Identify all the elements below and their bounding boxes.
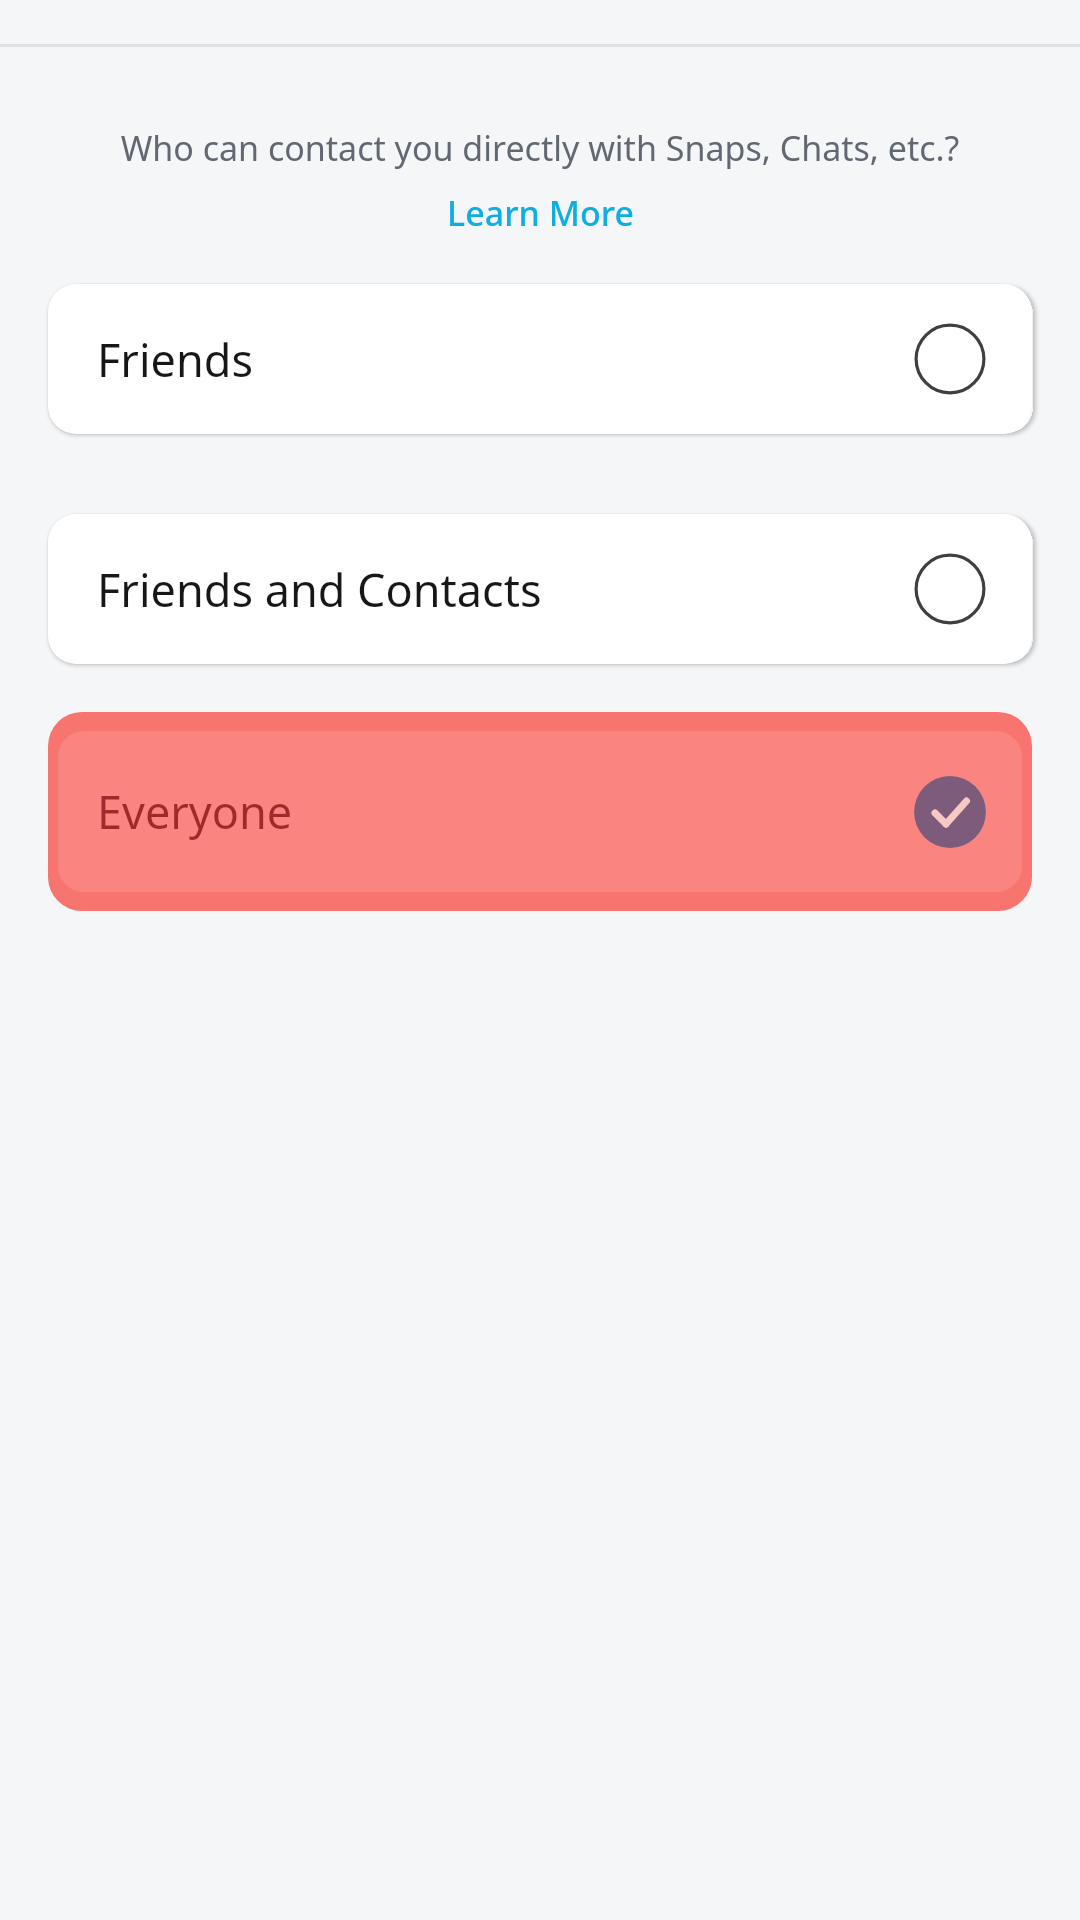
- staticText: Friends: [97, 329, 253, 390]
- button[interactable]: Friends and Contacts: [48, 514, 1032, 664]
- staticText: Friends and Contacts: [97, 559, 542, 620]
- button[interactable]: Learn More: [439, 188, 642, 238]
- staticText: Learn More: [447, 190, 634, 236]
- staticText: Who can contact you directly with Snaps,…: [40, 125, 1040, 171]
- other: Selected: [913, 775, 987, 849]
- button[interactable]: Friends: [48, 284, 1032, 434]
- staticText: Everyone: [97, 781, 293, 842]
- button[interactable]: Everyone: [48, 712, 1032, 911]
